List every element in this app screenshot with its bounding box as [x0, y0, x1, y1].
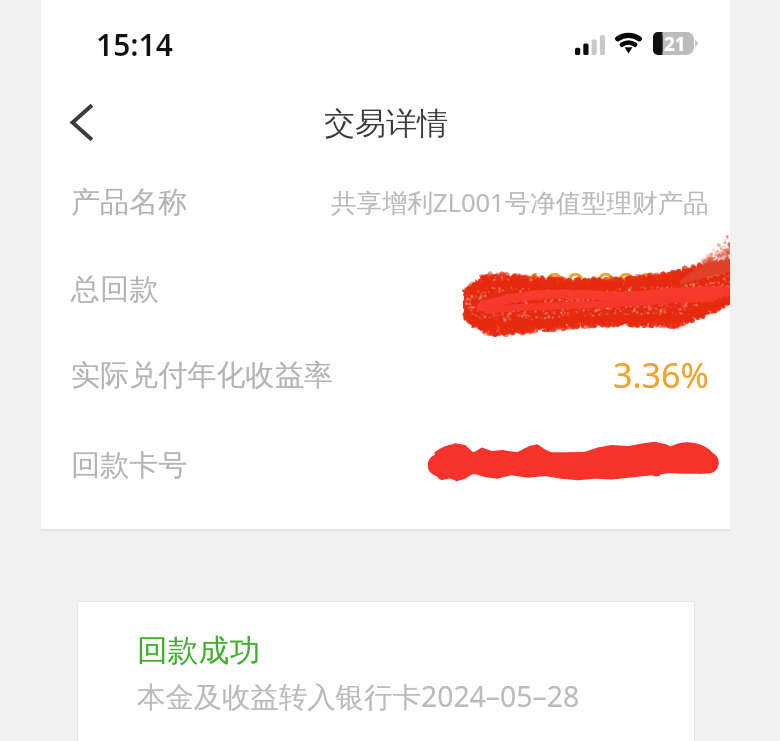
staticText: 本金及收益转入银行卡2024–05–28 [137, 677, 580, 716]
button[interactable]: 产品名称 [71, 158, 709, 246]
staticText: 100,000.00 [524, 261, 709, 310]
staticText: 共享增利ZL001号净值型理财产品 [331, 185, 709, 220]
button[interactable]: 回款卡号 [71, 421, 709, 509]
staticText: 15:14 [96, 24, 173, 65]
staticText: 产品名称 [71, 184, 188, 221]
staticText: 交易详情 [324, 104, 448, 143]
staticText: 回款卡号 [71, 447, 188, 484]
staticText: 回款成功 [137, 631, 261, 670]
button[interactable]: 回款成功 [78, 602, 694, 741]
staticText: 3.36% [613, 352, 709, 398]
staticText: 实际兑付年化收益率 [71, 357, 333, 394]
button[interactable]: Back [49, 93, 113, 151]
button[interactable]: 实际兑付年化收益率 [71, 331, 709, 419]
staticText: 21 [664, 31, 686, 54]
button[interactable]: 总回款 [71, 245, 709, 333]
staticText: 总回款 [71, 271, 159, 308]
